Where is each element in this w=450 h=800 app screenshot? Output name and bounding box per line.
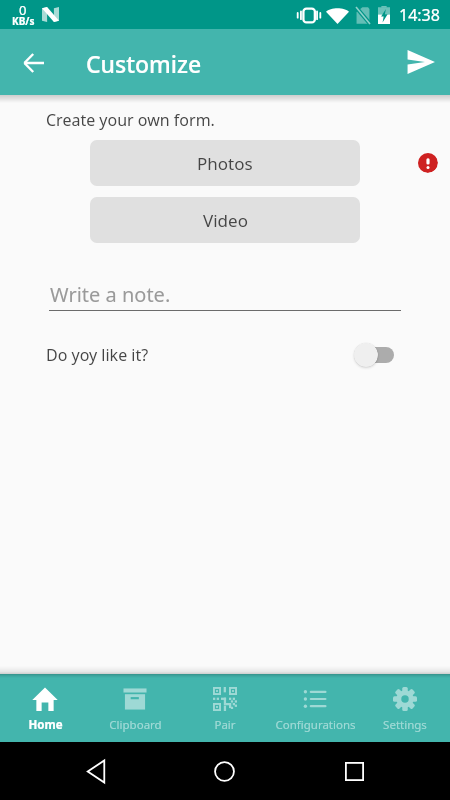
staticText: Configurations <box>275 717 356 733</box>
staticText: Do yoy like it? <box>46 344 149 366</box>
staticText: Create your own form. <box>46 109 215 131</box>
staticText: Write a note. <box>50 281 171 308</box>
staticText: Home <box>28 717 63 733</box>
button[interactable]: Pair <box>180 674 270 742</box>
staticText: Photos <box>197 152 253 175</box>
button[interactable]: Back <box>13 42 54 83</box>
other: Home <box>214 761 235 782</box>
button[interactable]: Clipboard <box>90 674 180 742</box>
button[interactable]: Do yoy like it toggle <box>354 341 394 369</box>
staticText: KB/s <box>12 14 35 28</box>
staticText: Pair <box>214 717 236 733</box>
button[interactable]: Photos <box>90 140 360 186</box>
button[interactable]: Send <box>400 41 441 82</box>
staticText: Settings <box>383 717 427 733</box>
button[interactable]: Home <box>0 674 90 742</box>
staticText: Customize <box>86 48 202 79</box>
button[interactable]: Video <box>90 197 360 243</box>
button[interactable]: Error <box>417 152 438 173</box>
other: Back <box>87 760 105 783</box>
button[interactable]: Configurations <box>270 674 360 742</box>
staticText: 0 <box>19 1 27 19</box>
button[interactable]: Settings <box>360 674 450 742</box>
staticText: Video <box>203 209 248 232</box>
staticText: Clipboard <box>109 717 162 733</box>
staticText: 14:38 <box>399 4 440 26</box>
other: Recents <box>345 762 364 781</box>
